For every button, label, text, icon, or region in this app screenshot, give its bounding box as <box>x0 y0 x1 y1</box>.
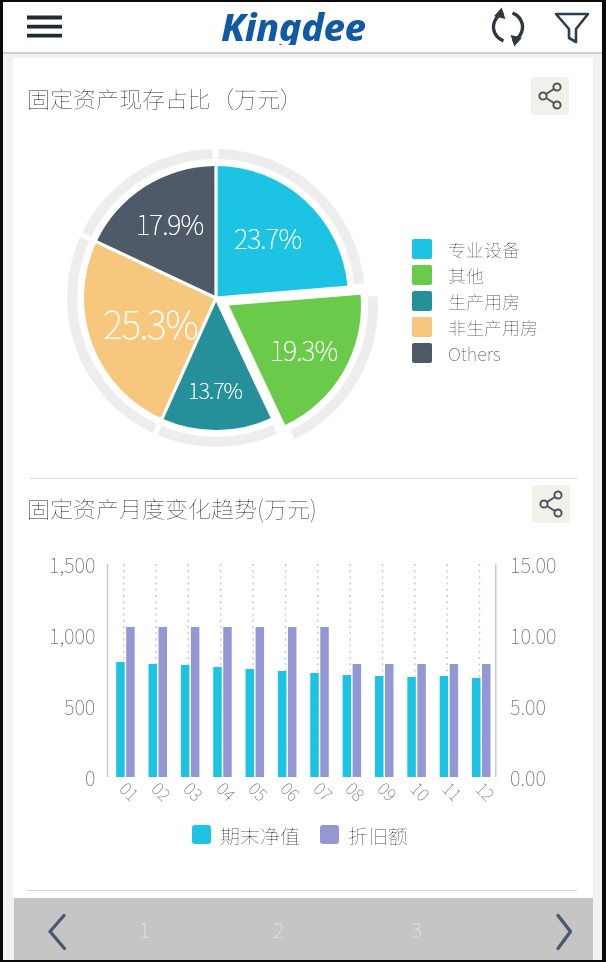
staticText: 19.3% <box>270 330 338 369</box>
staticText: 0 <box>85 763 96 792</box>
staticText: 2 <box>273 914 284 944</box>
button[interactable]: 其他 <box>412 262 484 288</box>
staticText: 17.9% <box>136 204 204 243</box>
staticText: 其他 <box>448 262 484 288</box>
staticText: 500 <box>64 692 96 721</box>
staticText: 5.00 <box>510 692 546 721</box>
staticText: 固定资产月度变化趋势(万元) <box>27 491 317 524</box>
staticText: 05 <box>246 776 274 804</box>
button[interactable] <box>40 908 74 956</box>
staticText: 生产用房 <box>448 288 520 314</box>
button[interactable] <box>546 908 580 956</box>
staticText: Kingdee <box>221 0 366 45</box>
staticText: 07 <box>311 776 339 804</box>
staticText: 04 <box>214 776 242 804</box>
staticText: 23.7% <box>234 218 302 257</box>
button[interactable] <box>551 7 593 47</box>
staticText: 1,500 <box>49 550 96 579</box>
button[interactable] <box>20 8 70 46</box>
staticText: 06 <box>278 776 306 804</box>
staticText: 02 <box>149 776 177 804</box>
staticText: 15.00 <box>510 550 557 579</box>
staticText: 13.7% <box>188 373 242 405</box>
button[interactable] <box>531 77 569 115</box>
staticText: 11 <box>440 776 468 804</box>
staticText: 期末净值 <box>220 821 300 850</box>
button[interactable] <box>532 485 570 523</box>
staticText: Others <box>448 340 501 366</box>
staticText: 09 <box>375 776 403 804</box>
button[interactable]: 生产用房 <box>412 288 520 314</box>
staticText: 固定资产现存占比（万元） <box>27 81 303 114</box>
staticText: 12 <box>473 776 501 804</box>
staticText: 25.3% <box>103 295 198 350</box>
staticText: 08 <box>343 776 371 804</box>
staticText: 10 <box>408 776 436 804</box>
staticText: 3 <box>411 914 422 944</box>
staticText: 1,000 <box>49 621 96 650</box>
staticText: 非生产用房 <box>448 314 538 340</box>
staticText: 01 <box>117 776 145 804</box>
staticText: 1 <box>139 914 150 944</box>
button[interactable] <box>488 7 528 47</box>
staticText: 03 <box>181 776 209 804</box>
button[interactable]: 非生产用房 <box>412 314 538 340</box>
button[interactable]: Others <box>412 340 501 366</box>
staticText: 0.00 <box>510 763 546 792</box>
staticText: 折旧额 <box>348 821 408 850</box>
staticText: 专业设备 <box>448 236 520 262</box>
button[interactable]: 专业设备 <box>412 236 520 262</box>
staticText: 10.00 <box>510 621 557 650</box>
